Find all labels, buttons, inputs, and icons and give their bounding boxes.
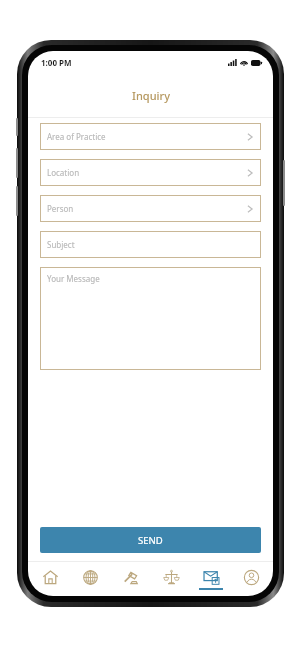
button[interactable]: Justice	[153, 562, 189, 596]
staticText: Inquiry	[132, 88, 170, 103]
button[interactable]: Person	[40, 195, 261, 222]
button[interactable]: SEND	[40, 527, 261, 553]
button[interactable]: Profile	[233, 562, 269, 596]
button[interactable]: Your Message	[40, 267, 261, 370]
staticText: SEND	[138, 534, 163, 547]
staticText: Person	[47, 203, 74, 214]
button[interactable]: Global	[72, 562, 108, 596]
staticText: 1:00 PM	[41, 57, 72, 68]
button[interactable]: Location	[40, 159, 261, 186]
staticText: Subject	[47, 239, 75, 250]
staticText: Location	[47, 167, 80, 178]
button[interactable]: Home	[32, 562, 68, 596]
button[interactable]: Inquiry	[193, 562, 229, 596]
staticText: Area of Practice	[47, 131, 106, 142]
button[interactable]: Gavel	[112, 562, 148, 596]
button[interactable]: Area of Practice	[40, 123, 261, 150]
button[interactable]: Subject	[40, 231, 261, 258]
staticText: Your Message	[47, 273, 100, 284]
